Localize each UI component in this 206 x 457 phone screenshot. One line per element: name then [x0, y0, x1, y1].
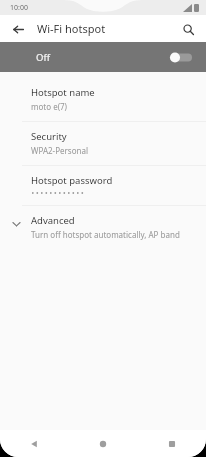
staticText: Off [36, 51, 50, 64]
staticText: Hotspot password [31, 174, 113, 187]
staticText: Turn off hotspot automatically, AP band [31, 229, 180, 240]
staticText: WPA2-Personal [31, 145, 88, 156]
button[interactable]: Back [8, 19, 28, 39]
button[interactable]: Recent apps [137, 430, 206, 457]
staticText: 10:00 [10, 3, 28, 13]
button[interactable]: Hotspot password [0, 166, 206, 205]
button[interactable]: Search [178, 19, 198, 39]
staticText: Wi-Fi hotspot [37, 21, 106, 36]
button[interactable]: Advanced [0, 206, 206, 249]
button[interactable]: Back [0, 430, 68, 457]
button[interactable]: Home [68, 430, 137, 457]
staticText: Security [31, 130, 67, 143]
button[interactable]: Hotspot name [0, 78, 206, 121]
staticText: Hotspot name [31, 86, 95, 99]
staticText: Advanced [31, 214, 75, 227]
button[interactable]: Security [0, 122, 206, 165]
staticText: moto e(7) [31, 101, 68, 112]
button[interactable]: Off [0, 42, 206, 72]
